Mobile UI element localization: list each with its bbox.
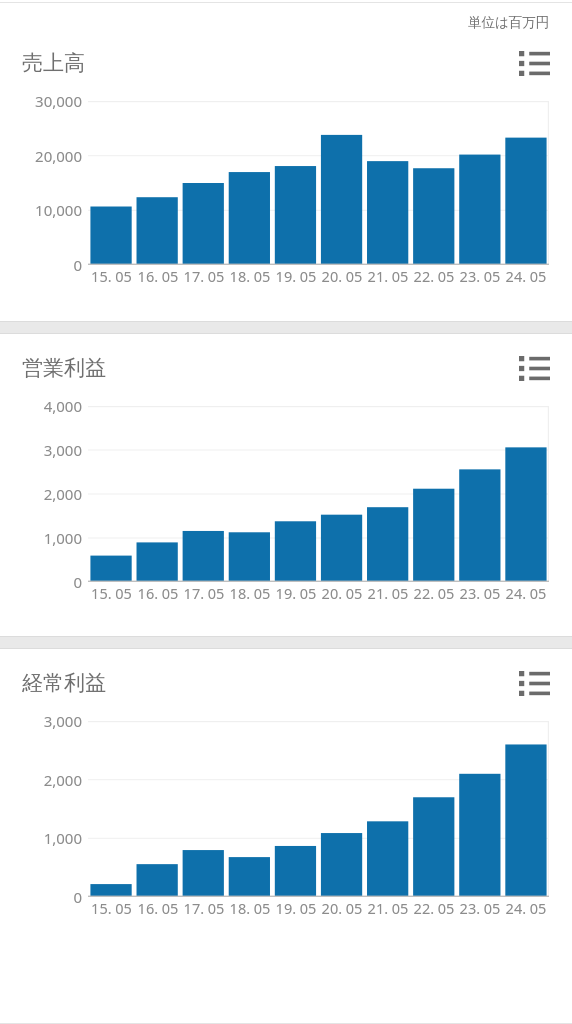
staticText: 0 — [0, 887, 82, 907]
staticText: 1,000 — [0, 528, 82, 548]
staticText: 21. 05 — [365, 583, 411, 603]
button[interactable]: Show data list — [512, 346, 556, 390]
staticText: 19. 05 — [273, 583, 319, 603]
staticText: 3,000 — [0, 440, 82, 460]
button[interactable]: Show data list — [512, 41, 556, 85]
staticText: 20. 05 — [319, 583, 365, 603]
staticText: 営業利益 — [22, 355, 512, 381]
staticText: 3,000 — [0, 711, 82, 731]
staticText: 経常利益 — [22, 670, 512, 696]
staticText: 売上高 — [22, 50, 512, 76]
staticText: 22. 05 — [411, 583, 457, 603]
staticText: 15. 05 — [88, 266, 135, 286]
staticText: 21. 05 — [365, 898, 411, 918]
staticText: 23. 05 — [457, 583, 503, 603]
staticText: 2,000 — [0, 770, 82, 790]
staticText: 23. 05 — [457, 898, 503, 918]
staticText: 24. 05 — [503, 898, 549, 918]
staticText: 16. 05 — [135, 898, 181, 918]
staticText: 17. 05 — [181, 898, 227, 918]
staticText: 24. 05 — [503, 266, 549, 286]
staticText: 22. 05 — [411, 266, 457, 286]
staticText: 18. 05 — [227, 898, 273, 918]
staticText: 2,000 — [0, 484, 82, 504]
staticText: 30,000 — [0, 91, 82, 111]
staticText: 20,000 — [0, 146, 82, 166]
button[interactable]: 経常利益 — [0, 661, 572, 705]
staticText: 15. 05 — [88, 583, 135, 603]
staticText: 18. 05 — [227, 583, 273, 603]
staticText: 22. 05 — [411, 898, 457, 918]
staticText: 19. 05 — [273, 898, 319, 918]
staticText: 単位は百万円 — [468, 14, 550, 31]
staticText: 20. 05 — [319, 266, 365, 286]
button[interactable]: Show data list — [512, 661, 556, 705]
button[interactable]: 営業利益 — [0, 346, 572, 390]
staticText: 15. 05 — [88, 898, 135, 918]
staticText: 1,000 — [0, 828, 82, 848]
staticText: 17. 05 — [181, 583, 227, 603]
staticText: 16. 05 — [135, 583, 181, 603]
staticText: 4,000 — [0, 396, 82, 416]
staticText: 19. 05 — [273, 266, 319, 286]
button[interactable]: 売上高 — [0, 41, 572, 85]
staticText: 16. 05 — [135, 266, 181, 286]
staticText: 23. 05 — [457, 266, 503, 286]
staticText: 10,000 — [0, 200, 82, 220]
staticText: 17. 05 — [181, 266, 227, 286]
staticText: 0 — [0, 255, 82, 275]
staticText: 18. 05 — [227, 266, 273, 286]
staticText: 21. 05 — [365, 266, 411, 286]
staticText: 24. 05 — [503, 583, 549, 603]
staticText: 20. 05 — [319, 898, 365, 918]
staticText: 0 — [0, 572, 82, 592]
